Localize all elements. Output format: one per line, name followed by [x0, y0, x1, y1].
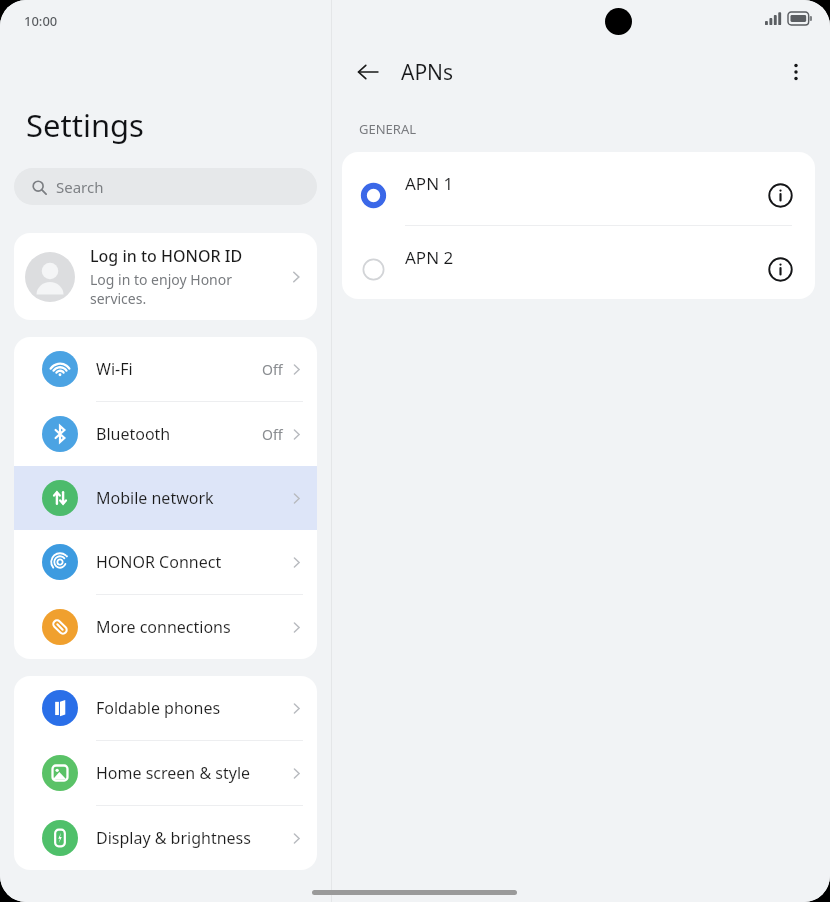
button[interactable]: Home screen & style: [14, 741, 317, 805]
staticText: Mobile network: [96, 487, 290, 509]
button[interactable]: Foldable phones: [14, 676, 317, 740]
button[interactable]: HONOR Connect: [14, 530, 317, 594]
staticText: GENERAL: [359, 120, 417, 138]
button[interactable]: APN 1: [342, 152, 815, 225]
staticText: Display & brightness: [96, 827, 290, 849]
staticText: Log in to HONOR ID: [90, 245, 243, 267]
staticText: Off: [262, 360, 283, 379]
button[interactable]: Details for APN 1: [763, 178, 797, 212]
staticText: Wi-Fi: [96, 358, 262, 380]
button[interactable]: More connections: [14, 595, 317, 659]
button[interactable]: Back: [348, 52, 388, 92]
button[interactable]: Search: [14, 168, 317, 205]
staticText: Foldable phones: [96, 697, 290, 719]
staticText: APNs: [401, 58, 454, 87]
staticText: More connections: [96, 616, 290, 638]
staticText: APN 1: [405, 172, 763, 195]
button[interactable]: Display & brightness: [14, 806, 317, 870]
staticText: Home screen & style: [96, 762, 290, 784]
staticText: Settings: [26, 104, 144, 146]
button[interactable]: Bluetooth: [14, 402, 317, 466]
staticText: Search: [56, 177, 104, 197]
button[interactable]: Wi-Fi: [14, 337, 317, 401]
staticText: Log in to enjoy Honor services.: [90, 270, 285, 308]
button[interactable]: Details for APN 2: [763, 252, 797, 286]
staticText: APN 2: [405, 246, 763, 269]
staticText: Off: [262, 425, 283, 444]
staticText: HONOR Connect: [96, 551, 290, 573]
staticText: 10:00: [24, 12, 58, 30]
button[interactable]: More options: [776, 52, 816, 92]
staticText: Bluetooth: [96, 423, 262, 445]
button[interactable]: APN 2: [342, 226, 815, 299]
button[interactable]: Mobile network: [14, 466, 317, 530]
button[interactable]: Log in to HONOR ID: [14, 233, 317, 320]
